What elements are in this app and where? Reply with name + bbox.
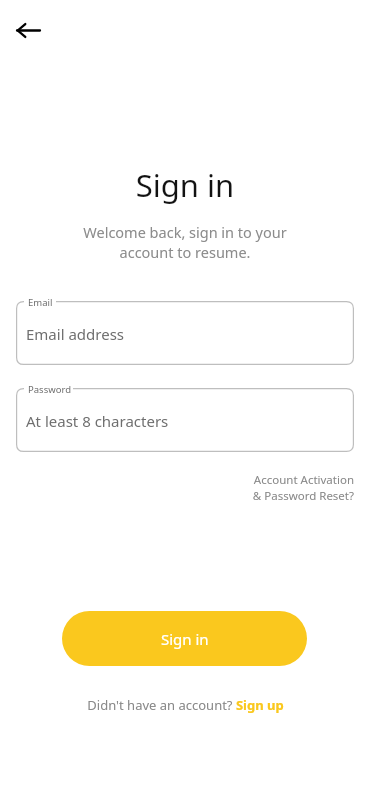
button[interactable]: Account Activation & Password Reset? [200,472,354,503]
staticText: At least 8 characters [26,411,169,431]
staticText: Account Activation & Password Reset? [200,472,354,503]
staticText: Welcome back, sign in to your account to… [40,222,330,262]
staticText: Email address [26,324,125,344]
staticText: Sign in [0,164,370,206]
button[interactable]: Back [8,10,48,50]
button[interactable]: Email [16,301,354,365]
staticText: Didn't have an account? Sign up [87,696,284,714]
button[interactable]: Sign in [62,611,307,666]
button[interactable]: Password [16,388,354,452]
staticText: Sign in [161,629,209,649]
staticText: Password [28,383,71,396]
staticText: Email [28,296,53,309]
button[interactable]: Didn't have an account? Sign up [0,694,370,716]
